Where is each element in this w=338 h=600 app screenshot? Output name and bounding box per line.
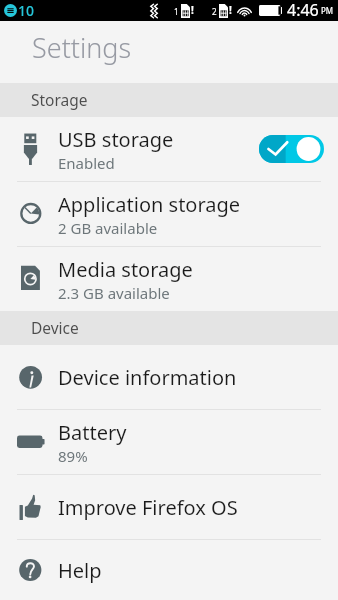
- staticText: Device information: [58, 364, 237, 391]
- staticText: 89%: [58, 446, 88, 466]
- button[interactable]: Device information: [0, 345, 338, 409]
- button[interactable]: USB storage toggle: [259, 135, 324, 163]
- staticText: 4:46: [287, 0, 319, 20]
- staticText: 2.3 GB available: [58, 283, 170, 303]
- staticText: !: [229, 3, 232, 17]
- staticText: Application storage: [58, 191, 241, 218]
- staticText: Storage: [31, 89, 88, 110]
- staticText: 2: [212, 6, 217, 17]
- button[interactable]: Battery: [0, 410, 338, 474]
- button[interactable]: Media storage: [0, 247, 338, 311]
- staticText: PM: [321, 5, 334, 16]
- button[interactable]: USB storage: [0, 117, 338, 181]
- staticText: Help: [58, 557, 102, 584]
- staticText: 1: [174, 6, 179, 17]
- staticText: Enabled: [58, 153, 115, 173]
- staticText: !: [191, 3, 194, 17]
- staticText: Media storage: [58, 256, 193, 283]
- staticText: Improve Firefox OS: [58, 494, 238, 521]
- staticText: 10: [18, 1, 35, 20]
- staticText: USB storage: [58, 126, 174, 153]
- staticText: Battery: [58, 419, 127, 446]
- staticText: 2 GB available: [58, 218, 158, 238]
- staticText: Device: [31, 317, 79, 338]
- staticText: Settings: [32, 29, 132, 66]
- button[interactable]: Help: [0, 540, 338, 600]
- button[interactable]: Improve Firefox OS: [0, 475, 338, 539]
- button[interactable]: Application storage: [0, 182, 338, 246]
